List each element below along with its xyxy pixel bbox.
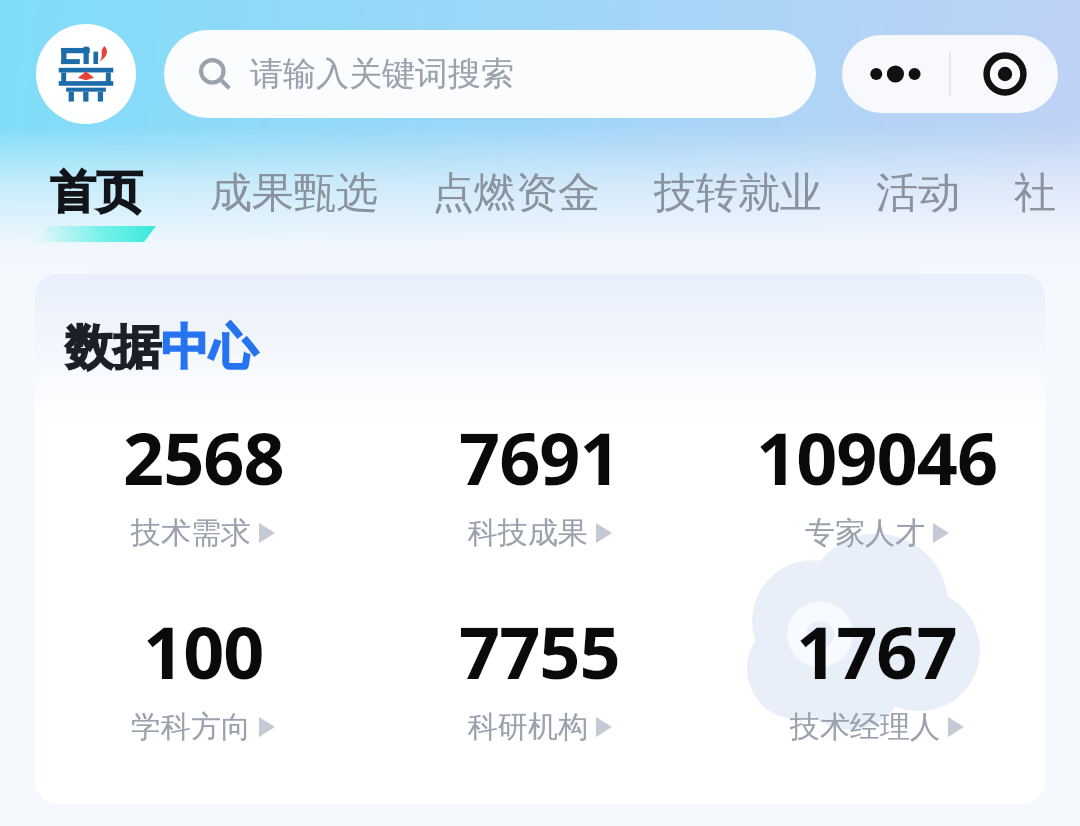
staticText: 请输入关键词搜索 xyxy=(250,53,514,95)
button[interactable]: 成果甄选 xyxy=(206,161,382,246)
button[interactable]: 点燃资金 xyxy=(428,161,604,246)
staticText: 7691 xyxy=(459,408,620,506)
button[interactable]: 1767 xyxy=(708,602,1045,746)
button[interactable]: 技转就业 xyxy=(650,161,826,246)
button[interactable]: 请输入关键词搜索 xyxy=(164,30,816,118)
staticText: 科研机构 xyxy=(468,708,588,746)
staticText: 社 xyxy=(1014,167,1056,220)
staticText: 技术需求 xyxy=(131,514,251,552)
staticText: 技术经理人 xyxy=(790,708,940,746)
staticText: 数据中心 xyxy=(65,318,257,378)
staticText: 首页 xyxy=(50,164,142,222)
button[interactable]: 首页 xyxy=(32,158,160,248)
staticText: 成果甄选 xyxy=(210,167,378,220)
button[interactable]: 109046 xyxy=(708,408,1045,552)
staticText: 2568 xyxy=(123,408,284,506)
staticText: 专家人才 xyxy=(805,514,925,552)
staticText: 100 xyxy=(143,602,264,700)
button[interactable]: 7691 xyxy=(371,408,708,552)
staticText: 学科方向 xyxy=(131,708,251,746)
button[interactable]: 7755 xyxy=(371,602,708,746)
button[interactable]: 活动 xyxy=(872,161,964,246)
staticText: 科技成果 xyxy=(468,514,588,552)
button[interactable]: Logo xyxy=(36,24,136,124)
staticText: 活动 xyxy=(876,167,960,220)
button[interactable]: More options xyxy=(842,35,949,113)
staticText: 7755 xyxy=(459,602,620,700)
staticText: 1767 xyxy=(796,602,957,700)
button[interactable]: 2568 xyxy=(35,408,371,552)
button[interactable]: Close mini program xyxy=(951,35,1058,113)
staticText: 109046 xyxy=(756,408,998,506)
button[interactable]: 100 xyxy=(35,602,371,746)
staticText: 技转就业 xyxy=(654,167,822,220)
staticText: 点燃资金 xyxy=(432,167,600,220)
button[interactable]: 社 xyxy=(1010,161,1060,246)
